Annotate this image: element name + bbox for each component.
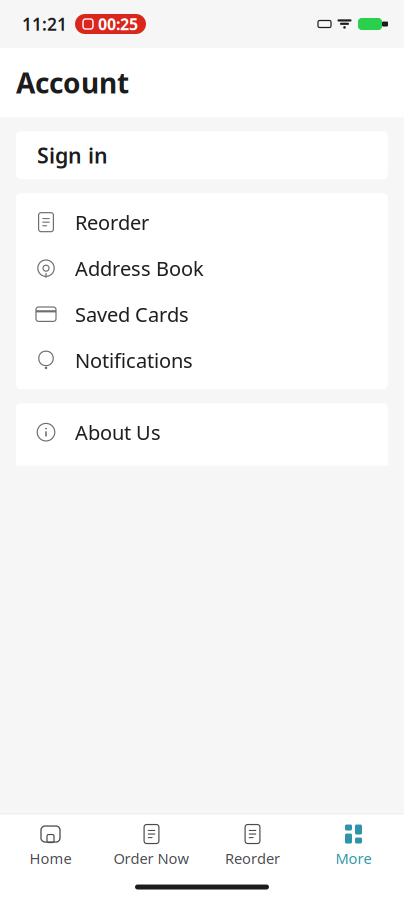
button[interactable]: Reorder [16,199,388,245]
button[interactable]: About Us [16,409,388,455]
staticText: Reorder [75,209,149,235]
staticText: Order Now [113,848,189,868]
button[interactable]: Saved Cards [16,291,388,337]
staticText: Reorder [225,848,280,868]
button[interactable]: Sign in [16,131,388,179]
staticText: Sign in [37,141,108,169]
button[interactable]: Support [16,455,388,501]
button[interactable]: Reorder [202,814,303,874]
staticText: Saved Cards [75,301,189,327]
button[interactable]: More [303,814,404,874]
staticText: 11:21 [22,12,67,35]
staticText: Notifications [75,347,193,373]
staticText: Account [16,64,129,101]
button[interactable]: Notifications [16,337,388,383]
staticText: Address Book [75,255,204,281]
button[interactable]: Address Book [16,245,388,291]
button[interactable]: Order Now [101,814,202,874]
staticText: Home [29,848,71,868]
button[interactable]: Home [0,814,101,874]
staticText: More [335,848,371,868]
staticText: About Us [75,419,161,445]
staticText: 00:25 [98,13,138,35]
